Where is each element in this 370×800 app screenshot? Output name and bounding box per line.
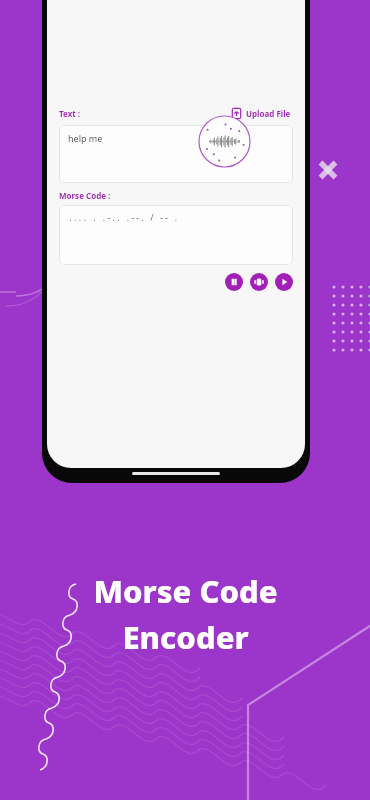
button[interactable]: Pause <box>225 273 243 291</box>
staticText: .... . .-.. .--. / -- . <box>68 212 179 223</box>
button[interactable]: Upload File <box>229 106 293 121</box>
button[interactable]: Vibrate <box>250 273 268 291</box>
button[interactable]: help me <box>59 125 293 183</box>
button[interactable]: Play <box>275 273 293 291</box>
staticText: Upload File <box>246 108 291 119</box>
button[interactable]: .... . .-.. .--. / -- . <box>59 205 293 265</box>
staticText: Text : <box>59 108 81 119</box>
staticText: Morse Code : <box>59 190 111 201</box>
staticText: Encoder <box>122 616 249 658</box>
staticText: help me <box>68 132 103 144</box>
staticText: Morse Code <box>93 570 278 612</box>
